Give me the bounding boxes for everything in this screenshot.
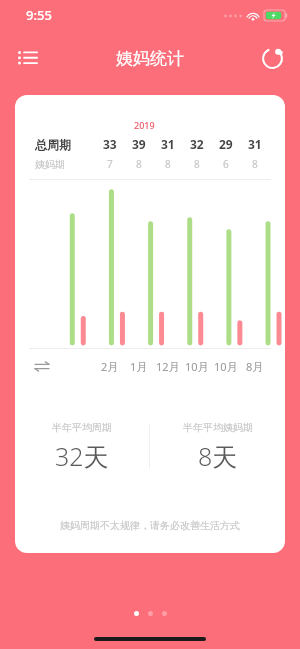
staticText: 8天 [198, 439, 238, 473]
staticText: 姨妈统计 [116, 48, 184, 69]
staticText: 39 [132, 136, 146, 152]
staticText: 姨妈周期不太规律，请务必改善生活方式 [15, 519, 285, 532]
staticText: 31 [161, 136, 175, 152]
staticText: 1月 [130, 359, 148, 374]
button[interactable]: Refresh [254, 40, 290, 76]
staticText: 姨妈期 [35, 158, 65, 171]
staticText: 31 [248, 136, 262, 152]
staticText: 半年平均周期 [52, 421, 112, 434]
staticText: 32天 [55, 439, 109, 473]
staticText: 8 [252, 157, 258, 171]
staticText: 10月 [185, 359, 209, 374]
staticText: 8月 [246, 359, 264, 374]
staticText: 7 [107, 157, 113, 171]
staticText: 2月 [101, 359, 119, 374]
staticText: 8 [194, 157, 200, 171]
staticText: 2019 [134, 119, 155, 131]
button[interactable]: Switch chart [35, 361, 95, 372]
staticText: 29 [219, 136, 233, 152]
staticText: 8 [165, 157, 171, 171]
staticText: 6 [223, 157, 229, 171]
staticText: 总周期 [35, 137, 71, 152]
staticText: 半年平均姨妈期 [183, 421, 253, 434]
staticText: 33 [103, 136, 117, 152]
staticText: 10月 [214, 359, 238, 374]
staticText: 32 [190, 136, 204, 152]
button[interactable]: Menu [10, 40, 46, 76]
staticText: 8 [136, 157, 142, 171]
staticText: 9:55 [26, 6, 52, 24]
staticText: 12月 [156, 359, 180, 374]
